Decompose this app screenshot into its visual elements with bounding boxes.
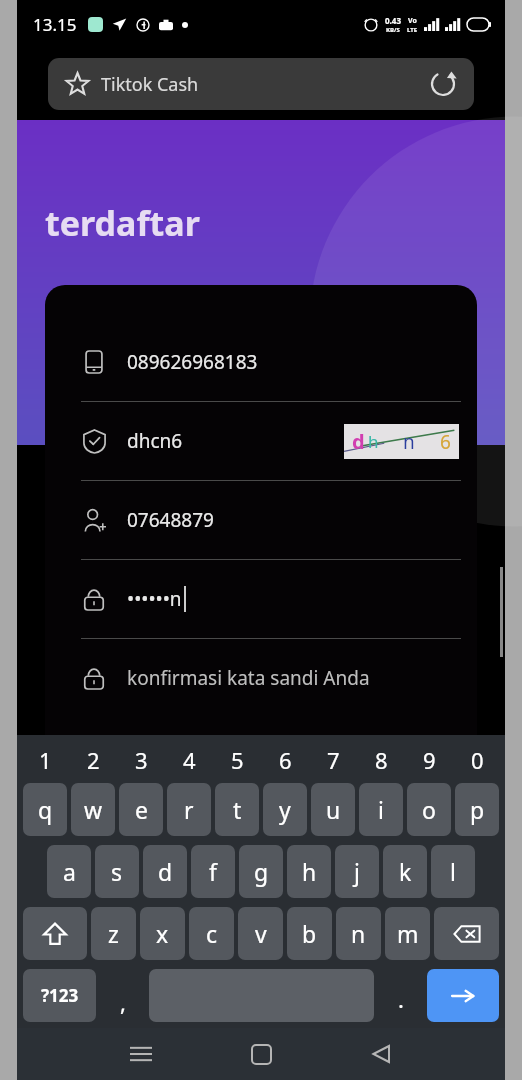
staticText: 0 [471,745,484,775]
button[interactable]: Back [359,1032,403,1076]
button[interactable]: . [378,969,423,1022]
staticText: i [378,794,384,825]
staticText: t [233,794,242,825]
staticText: 1 [39,745,52,775]
button[interactable]: Enter [427,969,499,1022]
staticText: 8 [375,745,388,775]
staticText: e [135,794,148,825]
button[interactable]: 5 [213,739,261,781]
button[interactable]: n [336,907,381,960]
button[interactable]: e [119,783,163,836]
button[interactable]: , [100,969,145,1022]
button[interactable]: g [239,845,283,898]
button[interactable]: x [140,907,185,960]
staticText: r [184,794,194,825]
staticText: n [351,918,366,949]
button[interactable]: ••••••n [45,560,477,638]
button[interactable]: dhcn6 [45,402,477,480]
staticText: 4 [183,745,196,775]
staticText: 9 [423,745,436,775]
button[interactable]: Recents [119,1032,163,1076]
button[interactable]: Reload [429,70,457,98]
button[interactable]: 4 [165,739,213,781]
button[interactable]: p [455,783,499,836]
button[interactable]: i [359,783,403,836]
staticText: j [354,856,360,887]
button[interactable]: s [95,845,139,898]
button[interactable]: konfirmasi kata sandi Anda [45,639,477,717]
staticText: v [255,918,267,949]
button[interactable]: r [167,783,211,836]
staticText: b [302,918,317,949]
button[interactable]: 8 [357,739,405,781]
button[interactable]: 089626968183 [45,323,477,401]
staticText: konfirmasi kata sandi Anda [127,665,370,691]
staticText: KB/S [386,26,400,34]
staticText: s [111,856,123,887]
staticText: x [156,918,169,949]
staticText: d [158,856,173,887]
staticText: y [279,794,291,825]
button[interactable]: ?123 [23,969,96,1022]
staticText: 6 [440,429,451,455]
staticText: . [398,984,404,1014]
button[interactable]: q [23,783,67,836]
button[interactable]: 0 [453,739,501,781]
staticText: ?123 [41,984,79,1007]
staticText: h [368,430,379,453]
button[interactable]: j [335,845,379,898]
button[interactable]: a [47,845,91,898]
button[interactable]: o [407,783,451,836]
button[interactable]: w [71,783,115,836]
staticText: 5 [231,745,244,775]
staticText: Vo [408,16,417,26]
button[interactable]: b [287,907,332,960]
button[interactable]: 1 [21,739,69,781]
staticText: LTE [407,26,418,34]
button[interactable]: Shift [23,907,87,960]
button[interactable]: m [385,907,430,960]
button[interactable]: z [91,907,136,960]
staticText: 0.43 [385,15,401,26]
button[interactable]: h [287,845,331,898]
button[interactable]: y [263,783,307,836]
button[interactable]: Tiktok Cash [48,58,474,110]
staticText: g [254,856,269,887]
staticText: 3 [135,745,148,775]
staticText: d [352,428,365,455]
staticText: k [399,856,412,887]
staticText: p [470,794,485,825]
staticText: 6 [279,745,292,775]
staticText: Tiktok Cash [101,72,199,97]
button[interactable]: 2 [69,739,117,781]
staticText: m [397,918,419,949]
button[interactable]: 9 [405,739,453,781]
staticText: w [84,794,103,825]
staticText: 13.15 [33,13,77,36]
button[interactable]: v [238,907,283,960]
staticText: n [403,429,415,455]
button[interactable]: 6 [261,739,309,781]
staticText: l [450,856,456,887]
button[interactable]: l [431,845,475,898]
button[interactable]: 7 [309,739,357,781]
button[interactable]: 3 [117,739,165,781]
button[interactable]: d [143,845,187,898]
staticText: ••••••n [127,586,182,612]
button[interactable]: Home [239,1032,283,1076]
button[interactable]: Backspace [434,907,499,960]
staticText: 07648879 [127,507,214,533]
button[interactable]: f [191,845,235,898]
staticText: 089626968183 [127,349,258,375]
staticText: f [209,856,217,887]
staticText: o [422,794,436,825]
button[interactable]: t [215,783,259,836]
staticText: z [108,918,119,949]
button[interactable]: 07648879 [45,481,477,559]
button[interactable]: u [311,783,355,836]
staticText: , [120,987,126,1017]
button[interactable]: k [383,845,427,898]
staticText: a [63,856,76,887]
button[interactable]: c [189,907,234,960]
